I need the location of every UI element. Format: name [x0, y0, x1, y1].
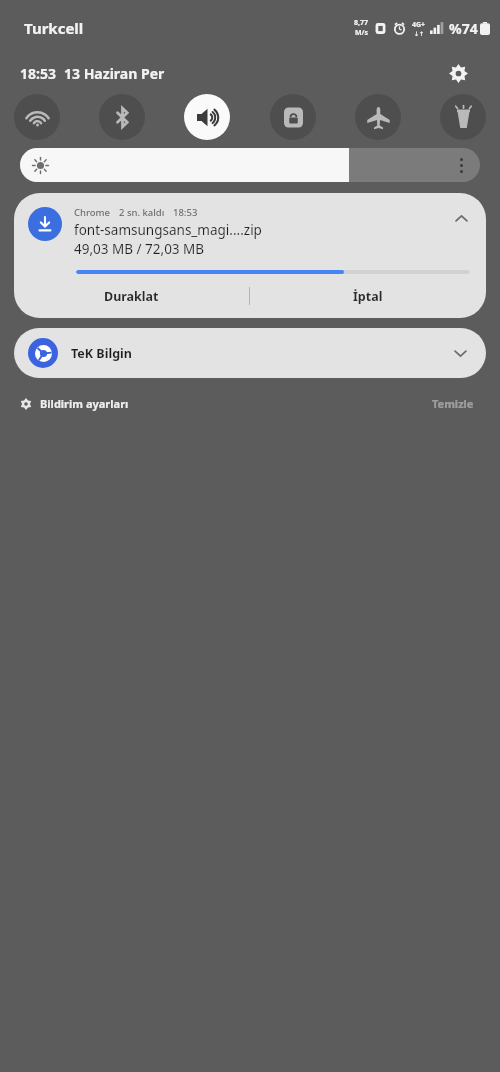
button[interactable]: Sound: [184, 94, 230, 140]
button[interactable]: Bluetooth: [99, 94, 145, 140]
staticText: Temizle: [432, 396, 474, 411]
button[interactable]: TeK Bilgin: [14, 328, 486, 378]
button[interactable]: Expand: [448, 341, 472, 365]
staticText: TeK Bilgin: [71, 345, 132, 362]
staticText: M/s: [355, 28, 369, 38]
staticText: Turkcell: [24, 18, 84, 38]
staticText: ↓↑: [414, 30, 425, 37]
button[interactable]: Chrome: [14, 193, 486, 264]
button[interactable]: Temizle: [426, 392, 480, 415]
staticText: 49,03 MB / 72,03 MB: [74, 240, 205, 258]
staticText: Chrome: [74, 206, 111, 219]
button[interactable]: Duraklat: [14, 274, 249, 318]
staticText: 18:53: [173, 206, 198, 219]
staticText: İptal: [353, 288, 383, 305]
staticText: Bildirim ayarları: [40, 396, 129, 411]
button[interactable]: Wi-Fi: [14, 94, 60, 140]
button[interactable]: Flashlight: [440, 94, 486, 140]
staticText: Duraklat: [104, 288, 159, 305]
staticText: font-samsungsans_magi....zip: [74, 221, 262, 239]
button[interactable]: Settings: [444, 59, 472, 87]
staticText: 13 Haziran Per: [64, 64, 165, 83]
button[interactable]: Bildirim ayarları: [14, 392, 135, 415]
button[interactable]: Collapse: [448, 205, 474, 231]
button[interactable]: Airplane mode: [355, 94, 401, 140]
staticText: %74: [449, 19, 478, 38]
button[interactable]: Brightness: [20, 148, 480, 182]
staticText: 2 sn. kaldı: [119, 206, 165, 219]
button[interactable]: İptal: [250, 274, 486, 318]
staticText: 8,77: [354, 18, 369, 28]
staticText: 18:53: [20, 64, 56, 83]
button[interactable]: Screen lock: [270, 94, 316, 140]
staticText: 4G+: [412, 20, 426, 30]
